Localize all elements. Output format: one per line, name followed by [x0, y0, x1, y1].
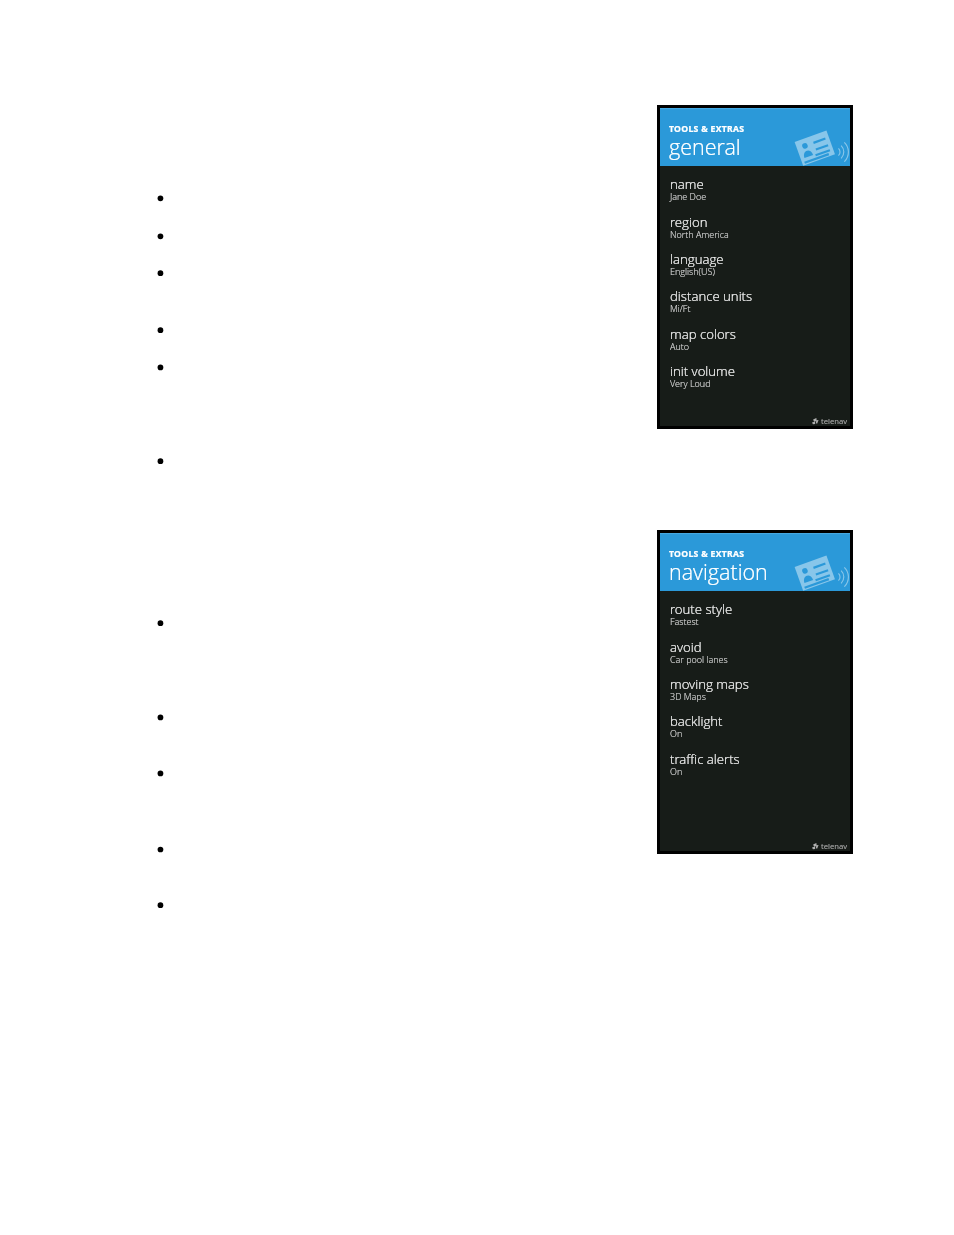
staticText: English(US)	[670, 265, 715, 277]
button[interactable]: distance units	[660, 287, 850, 324]
staticText: map colors	[670, 325, 736, 343]
staticText: TOOLS & EXTRAS	[669, 123, 745, 135]
other: telenav logo	[812, 417, 820, 425]
staticText: traffic alerts	[670, 750, 740, 768]
staticText: Auto	[670, 340, 689, 352]
button[interactable]: map colors	[660, 325, 850, 362]
staticText: language	[670, 250, 724, 268]
staticText: Jane Doe	[670, 190, 707, 202]
staticText: route style	[670, 600, 733, 618]
staticText: Mi/Ft	[670, 302, 691, 314]
button[interactable]: moving maps	[660, 675, 850, 712]
button[interactable]: Tools & extras – general	[660, 108, 850, 166]
staticText: 3D Maps	[670, 690, 706, 702]
button[interactable]: name	[660, 175, 850, 212]
staticText: init volume	[670, 362, 736, 380]
button[interactable]: language	[660, 250, 850, 287]
staticText: backlight	[670, 712, 723, 730]
staticText: region	[670, 213, 708, 231]
staticText: North America	[670, 228, 729, 240]
staticText: Car pool lanes	[670, 653, 728, 665]
staticText: telenav	[821, 841, 848, 851]
button[interactable]: region	[660, 213, 850, 250]
button[interactable]: traffic alerts	[660, 750, 850, 787]
staticText: Fastest	[670, 615, 699, 627]
staticText: distance units	[670, 287, 753, 305]
button[interactable]: backlight	[660, 712, 850, 749]
button[interactable]: telenav logo	[812, 416, 848, 426]
button[interactable]: avoid	[660, 638, 850, 675]
staticText: name	[670, 175, 704, 193]
staticText: moving maps	[670, 675, 749, 693]
staticText: avoid	[670, 638, 702, 656]
button[interactable]: route style	[660, 600, 850, 637]
staticText: TOOLS & EXTRAS	[669, 548, 745, 560]
staticText: general	[669, 132, 741, 161]
button[interactable]: init volume	[660, 362, 850, 399]
staticText: Very Loud	[670, 377, 711, 389]
staticText: On	[670, 765, 683, 777]
staticText: On	[670, 727, 683, 739]
staticText: telenav	[821, 416, 848, 426]
button[interactable]: Tools & extras – navigation	[660, 533, 850, 591]
button[interactable]: telenav logo	[812, 841, 848, 851]
staticText: navigation	[669, 557, 768, 586]
other: telenav logo	[812, 842, 820, 850]
